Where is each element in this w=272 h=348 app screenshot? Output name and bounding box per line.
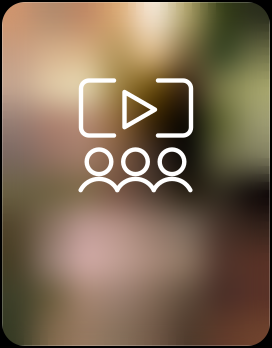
button[interactable]: SharePlay xyxy=(0,0,272,348)
